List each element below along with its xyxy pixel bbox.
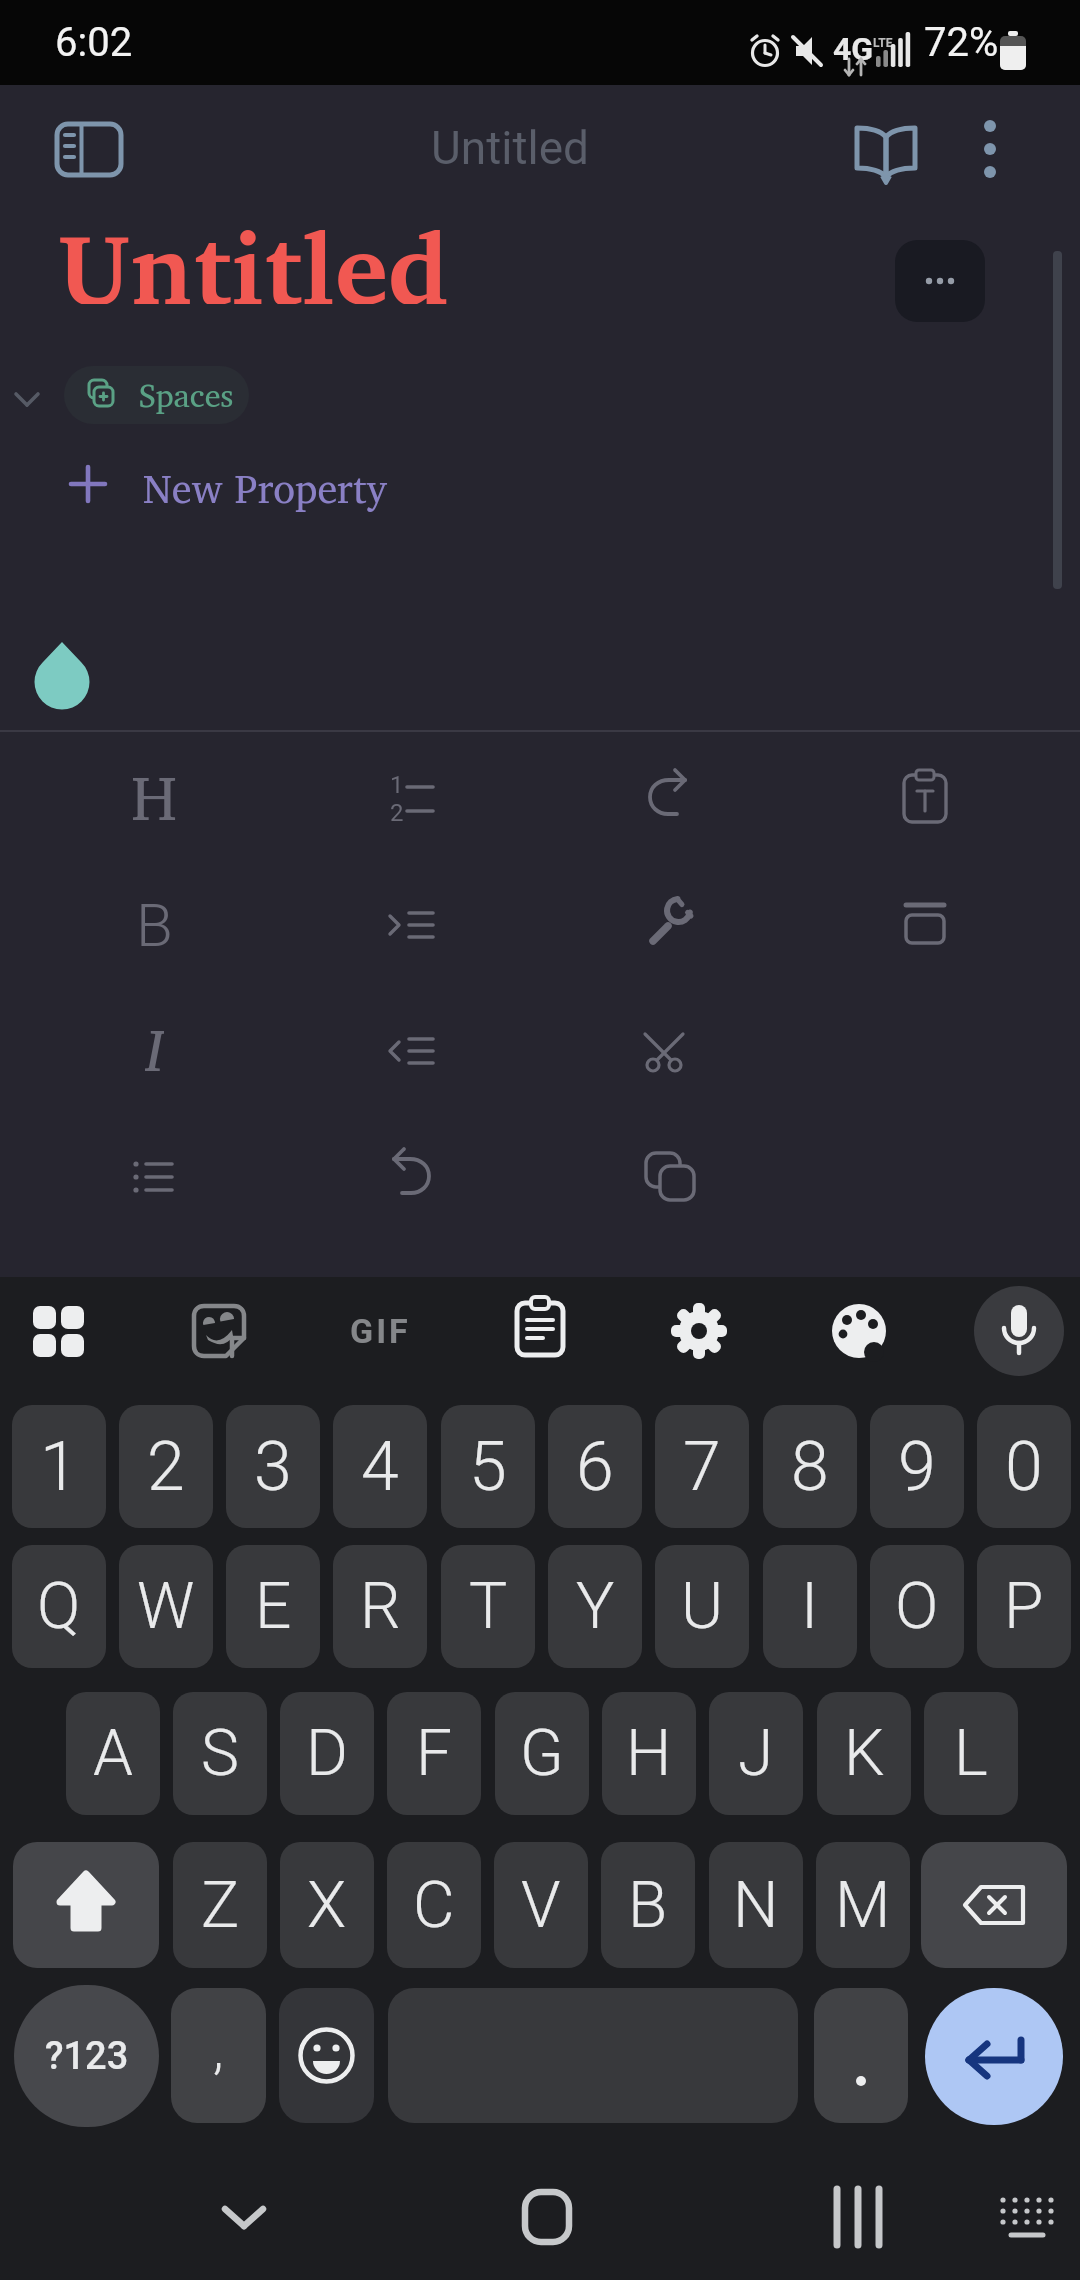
button[interactable] bbox=[818, 2177, 898, 2257]
button[interactable] bbox=[814, 1988, 908, 2123]
button[interactable]: 1 bbox=[384, 770, 410, 800]
button[interactable]: 1 bbox=[12, 1405, 106, 1528]
staticText: GIF bbox=[350, 1311, 411, 1351]
button[interactable]: 2 bbox=[119, 1405, 213, 1528]
button[interactable]: 7 bbox=[655, 1405, 749, 1528]
staticText: 2 bbox=[147, 1427, 185, 1507]
button[interactable]: , bbox=[171, 1988, 266, 2123]
button[interactable] bbox=[921, 1842, 1067, 1968]
staticText: T bbox=[469, 1569, 508, 1644]
button[interactable]: I bbox=[763, 1545, 857, 1668]
staticText: 1 bbox=[40, 1427, 78, 1507]
button[interactable] bbox=[623, 880, 713, 970]
button[interactable]: Q bbox=[12, 1545, 106, 1668]
button[interactable] bbox=[654, 1286, 744, 1376]
staticText: 6 bbox=[576, 1427, 614, 1507]
button[interactable]: Spaces bbox=[64, 366, 249, 424]
button[interactable] bbox=[13, 1842, 159, 1968]
button[interactable] bbox=[895, 240, 985, 322]
button[interactable] bbox=[880, 880, 970, 970]
staticText: Y bbox=[576, 1569, 615, 1644]
button[interactable]: 3 bbox=[226, 1405, 320, 1528]
button[interactable]: 5 bbox=[441, 1405, 535, 1528]
button[interactable] bbox=[174, 1286, 264, 1376]
button[interactable] bbox=[921, 1988, 1067, 2125]
button[interactable]: D bbox=[280, 1692, 374, 1815]
button[interactable]: V bbox=[494, 1842, 588, 1968]
button[interactable] bbox=[366, 880, 456, 970]
button[interactable] bbox=[495, 1286, 585, 1376]
button[interactable] bbox=[623, 1006, 713, 1096]
staticText: F bbox=[416, 1716, 452, 1791]
staticText: W bbox=[137, 1569, 195, 1644]
button[interactable]: ?123 bbox=[13, 1985, 159, 2127]
staticText: K bbox=[844, 1716, 885, 1791]
staticText: G bbox=[520, 1716, 564, 1791]
button[interactable] bbox=[814, 1286, 904, 1376]
button[interactable] bbox=[950, 109, 1030, 189]
staticText: 0 bbox=[1005, 1427, 1043, 1507]
button[interactable]: 9 bbox=[870, 1405, 964, 1528]
button[interactable] bbox=[841, 104, 931, 194]
button[interactable] bbox=[623, 753, 713, 843]
button[interactable]: C bbox=[387, 1842, 481, 1968]
button[interactable] bbox=[13, 1286, 103, 1376]
staticText: 8 bbox=[791, 1427, 829, 1507]
button[interactable]: Z bbox=[173, 1842, 267, 1968]
button[interactable]: U bbox=[655, 1545, 749, 1668]
button[interactable]: H bbox=[114, 746, 194, 822]
button[interactable] bbox=[987, 2178, 1067, 2258]
button[interactable]: O bbox=[870, 1545, 964, 1668]
staticText: P bbox=[1004, 1569, 1044, 1644]
button[interactable]: B bbox=[601, 1842, 695, 1968]
button[interactable] bbox=[279, 1988, 374, 2123]
button[interactable]: 6 bbox=[548, 1405, 642, 1528]
button[interactable] bbox=[507, 2177, 587, 2257]
button[interactable]: X bbox=[280, 1842, 374, 1968]
staticText: U bbox=[681, 1569, 724, 1644]
button[interactable]: 8 bbox=[763, 1405, 857, 1528]
staticText: 4G bbox=[833, 30, 874, 68]
staticText: 6:02 bbox=[55, 19, 133, 66]
staticText: V bbox=[521, 1868, 561, 1943]
button[interactable]: 4 bbox=[333, 1405, 427, 1528]
button[interactable]: New Property bbox=[60, 455, 460, 515]
button[interactable]: F bbox=[387, 1692, 481, 1815]
button[interactable] bbox=[366, 1006, 456, 1096]
staticText: S bbox=[201, 1716, 239, 1791]
staticText: R bbox=[360, 1569, 401, 1644]
button[interactable] bbox=[623, 1132, 713, 1222]
button[interactable]: P bbox=[977, 1545, 1071, 1668]
staticText: Q bbox=[37, 1569, 81, 1644]
button[interactable] bbox=[204, 2176, 284, 2256]
button[interactable]: K bbox=[817, 1692, 911, 1815]
button[interactable] bbox=[366, 1132, 456, 1222]
button[interactable]: N bbox=[709, 1842, 803, 1968]
button[interactable]: W bbox=[119, 1545, 213, 1668]
button[interactable]: M bbox=[816, 1842, 910, 1968]
button[interactable]: GIF bbox=[340, 1300, 420, 1362]
button[interactable] bbox=[109, 1132, 199, 1222]
button[interactable]: I bbox=[114, 999, 194, 1075]
button[interactable] bbox=[880, 753, 970, 843]
staticText: 9 bbox=[898, 1427, 936, 1507]
staticText: H bbox=[131, 746, 178, 822]
button[interactable]: B bbox=[114, 887, 194, 963]
button[interactable]: E bbox=[226, 1545, 320, 1668]
button[interactable]: T bbox=[441, 1545, 535, 1668]
button[interactable]: L bbox=[924, 1692, 1018, 1815]
button[interactable]: 0 bbox=[977, 1405, 1071, 1528]
button[interactable] bbox=[44, 104, 134, 194]
button[interactable] bbox=[971, 1283, 1067, 1379]
button[interactable]: H bbox=[602, 1692, 696, 1815]
button[interactable]: A bbox=[66, 1692, 160, 1815]
button[interactable]: J bbox=[709, 1692, 803, 1815]
staticText: D bbox=[306, 1716, 348, 1791]
button[interactable]: R bbox=[333, 1545, 427, 1668]
staticText: New Property bbox=[143, 455, 388, 515]
button[interactable]: S bbox=[173, 1692, 267, 1815]
staticText: 4 bbox=[361, 1427, 399, 1507]
button[interactable]: G bbox=[495, 1692, 589, 1815]
button[interactable]: Y bbox=[548, 1545, 642, 1668]
